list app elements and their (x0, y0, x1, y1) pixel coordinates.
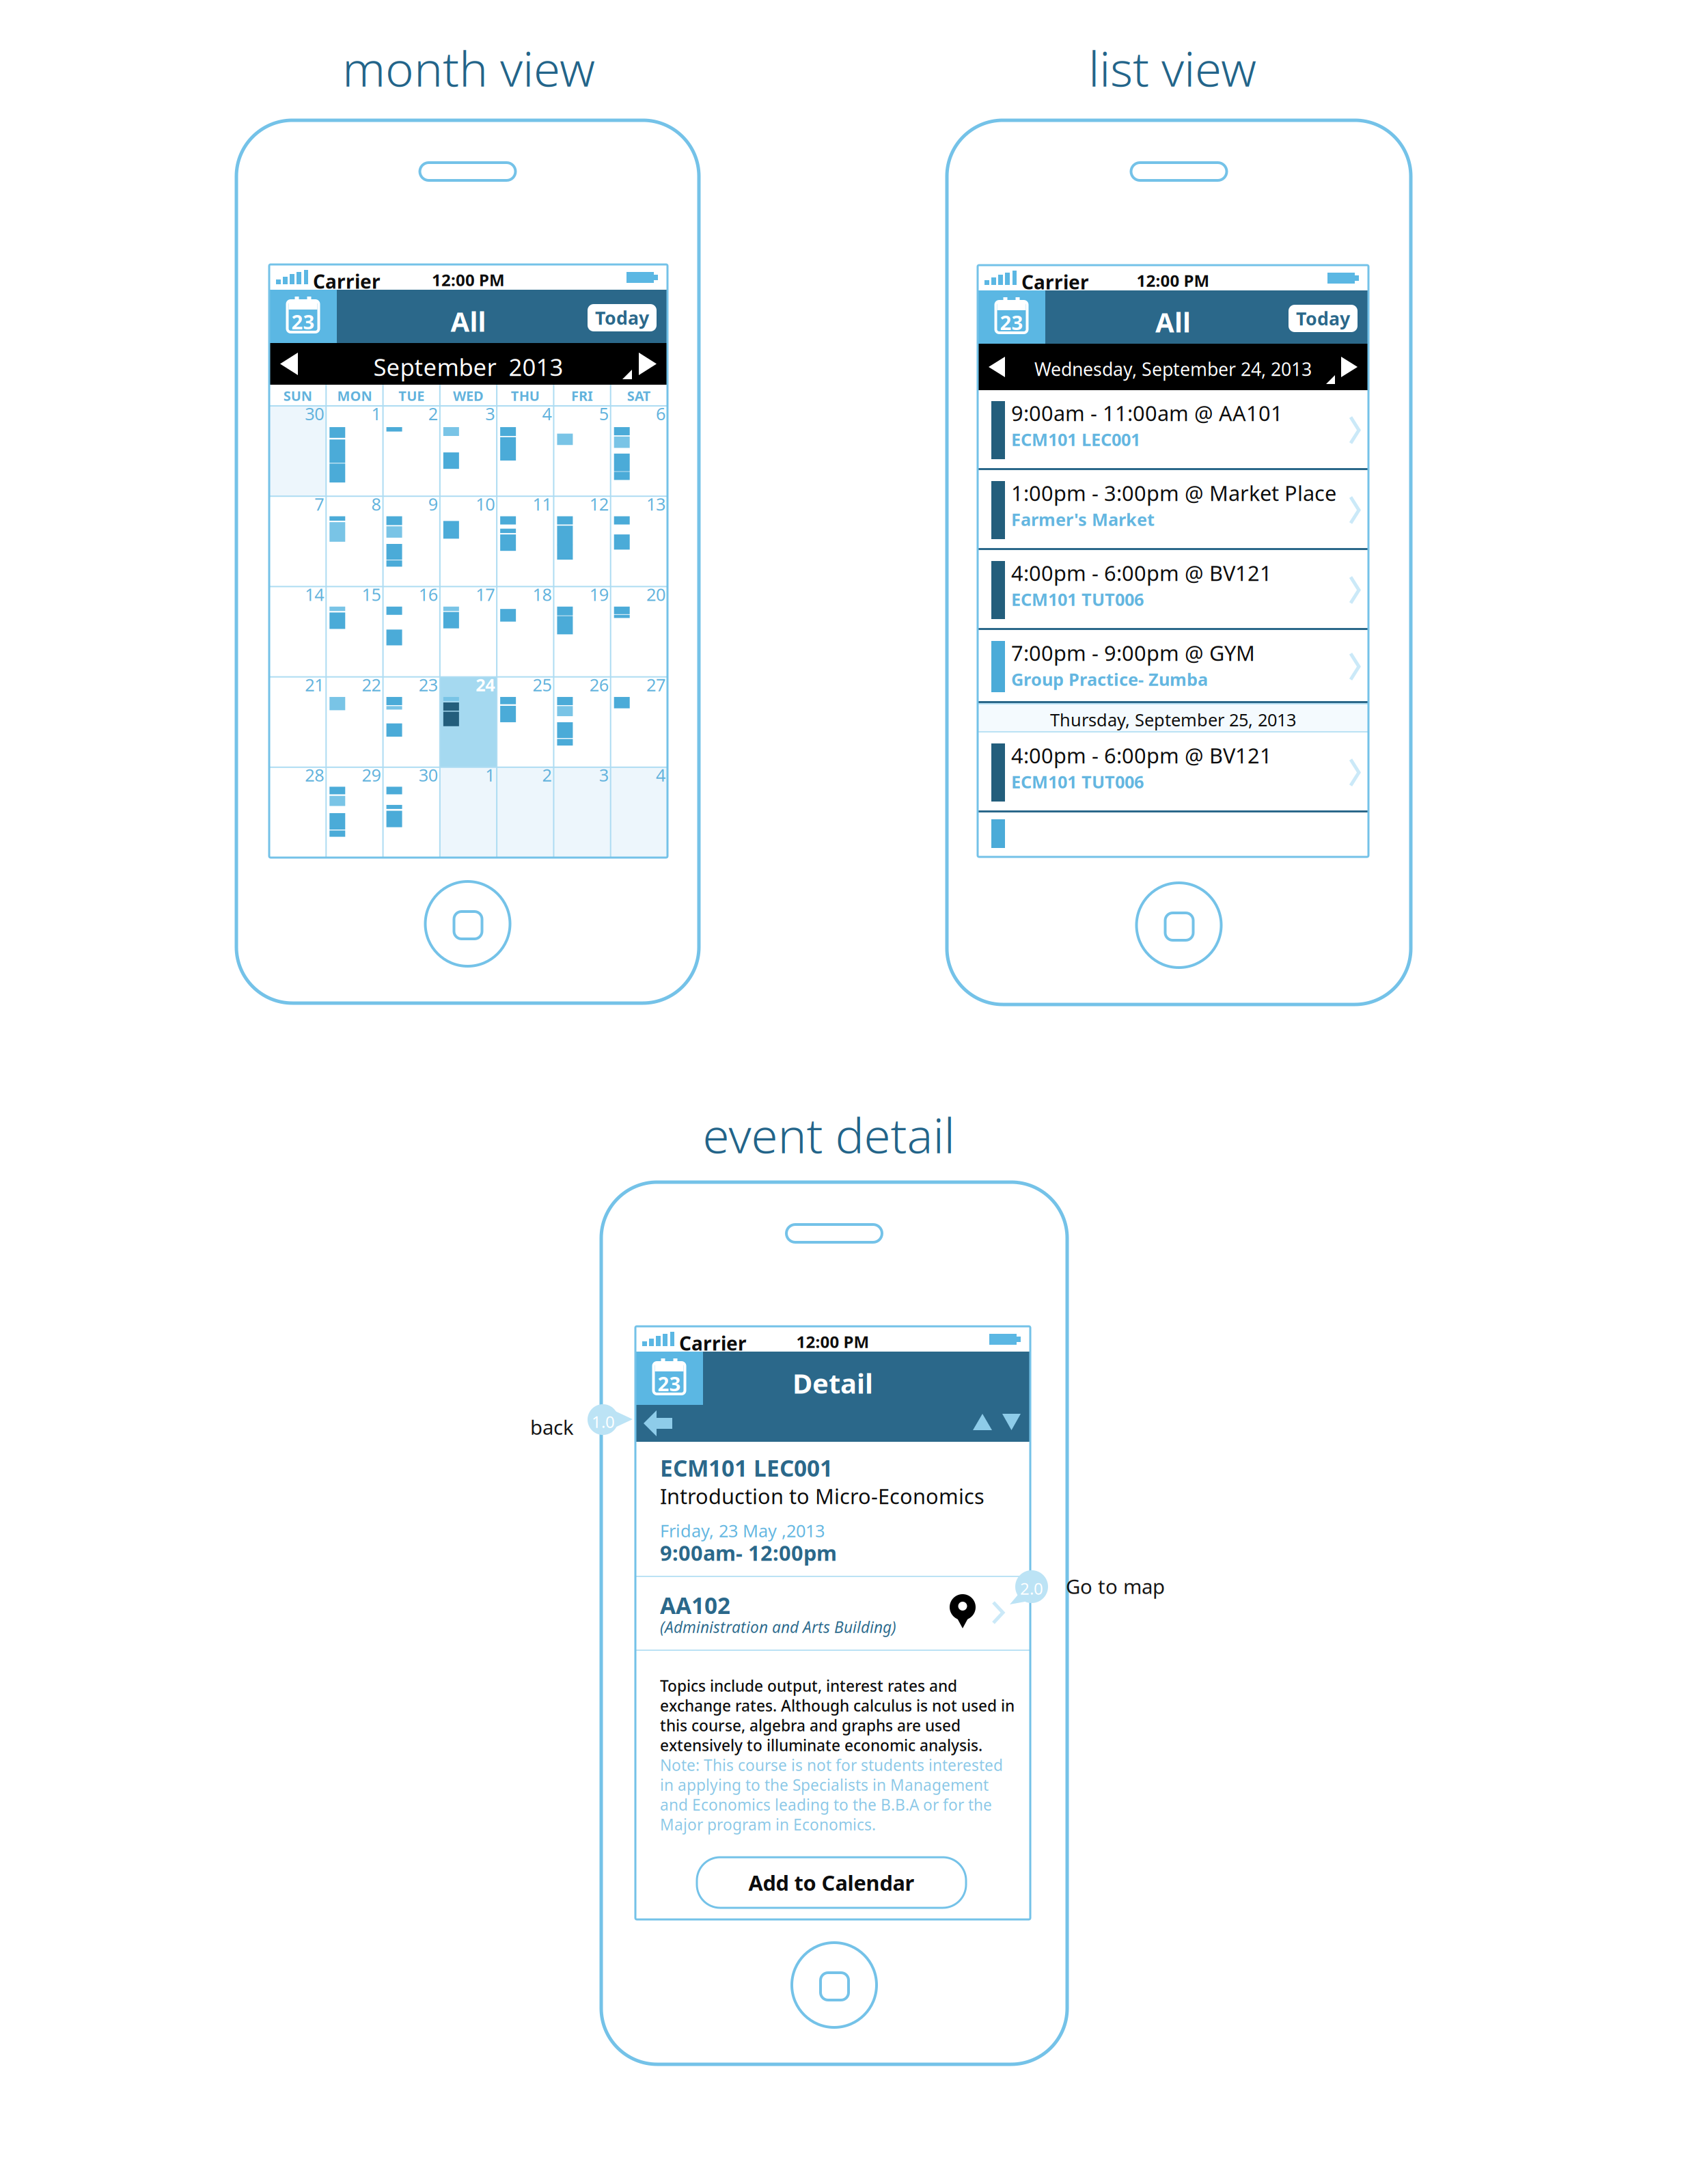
button[interactable]: 1:00pm - 3:00pm @ Market Place (978, 470, 1368, 550)
staticText: Farmer's Market (1011, 508, 1155, 531)
staticText: FRI (571, 387, 593, 405)
staticText: WED (453, 387, 484, 405)
button[interactable]: AA102 (635, 1576, 1030, 1650)
staticText: ECM101 TUT006 (1011, 588, 1144, 611)
staticText: exchange rates. Although calculus is not… (660, 1695, 1015, 1716)
staticText: Add to Calendar (748, 1869, 914, 1896)
staticText: 21 (305, 673, 324, 696)
staticText: event detail (703, 1103, 955, 1167)
staticText: 12:00 PM (1137, 270, 1210, 291)
staticText: 4:00pm - 6:00pm @ BV121 (1011, 559, 1272, 587)
staticText: 23 (658, 1370, 681, 1397)
staticText: 15 (362, 583, 381, 606)
staticText: THU (511, 387, 540, 405)
staticText: Carrier (1021, 269, 1089, 295)
staticText: Introduction to Micro-Economics (660, 1482, 984, 1510)
staticText: 4 (542, 402, 552, 425)
staticText: AA102 (660, 1590, 730, 1620)
staticText: 8 (371, 492, 381, 515)
staticText: in applying to the Specialists in Manage… (660, 1775, 989, 1795)
staticText: 9:00am - 11:00am @ AA101 (1011, 399, 1283, 427)
staticText: Go to map (1066, 1573, 1165, 1600)
staticText: 19 (589, 583, 609, 606)
staticText: this course, algebra and graphs are used (660, 1715, 961, 1736)
staticText: 7:00pm - 9:00pm @ GYM (1011, 639, 1255, 667)
button[interactable]: 4:00pm - 6:00pm @ BV121 (978, 733, 1368, 812)
staticText: 26 (589, 673, 609, 696)
staticText: Major program in Economics. (660, 1814, 876, 1835)
staticText: TUE (398, 387, 424, 405)
staticText: 25 (532, 673, 552, 696)
staticText: Today (595, 306, 649, 330)
staticText: 5 (599, 402, 609, 425)
button[interactable]: 9:00am - 11:00am @ AA101 (978, 390, 1368, 470)
button[interactable]: 7:00pm - 9:00pm @ GYM (978, 630, 1368, 703)
staticText: 9:00am- 12:00pm (660, 1539, 837, 1567)
staticText: 18 (532, 583, 552, 606)
staticText: 2.0 (1020, 1577, 1043, 1599)
staticText: 28 (305, 763, 324, 786)
staticText: 11 (532, 492, 552, 515)
staticText: 10 (476, 492, 495, 515)
staticText: Carrier (679, 1330, 747, 1356)
staticText: 30 (305, 402, 324, 425)
staticText: 2 (428, 402, 438, 425)
staticText: Detail (793, 1365, 873, 1401)
staticText: MON (337, 387, 372, 405)
staticText: 2 (542, 763, 552, 786)
staticText: 7 (314, 492, 324, 515)
staticText: extensively to illuminate economic analy… (660, 1735, 982, 1755)
staticText: All (1155, 304, 1191, 340)
staticText: and Economics leading to the B.B.A or fo… (660, 1794, 992, 1815)
staticText: 23 (291, 308, 315, 335)
staticText: ECM101 LEC001 (660, 1453, 833, 1483)
staticText: 13 (646, 492, 665, 515)
staticText: SAT (627, 387, 651, 405)
staticText: 1 (371, 402, 381, 425)
staticText: Today (1296, 306, 1350, 331)
staticText: 3 (599, 763, 609, 786)
staticText: Group Practice- Zumba (1011, 668, 1208, 691)
staticText: 24 (476, 673, 495, 696)
staticText: 1 (485, 763, 495, 786)
staticText: Carrier (313, 269, 381, 294)
staticText: 16 (419, 583, 438, 606)
button[interactable]: 4:00pm - 6:00pm @ BV121 (978, 550, 1368, 630)
staticText: 29 (362, 763, 381, 786)
staticText: 4 (656, 763, 665, 786)
staticText: 30 (419, 763, 438, 786)
staticText: September 2013 (373, 351, 563, 383)
button[interactable]: Today (588, 304, 657, 331)
staticText: ECM101 LEC001 (1011, 428, 1140, 451)
staticText: 12:00 PM (796, 1331, 869, 1353)
staticText: (Administration and Arts Building) (660, 1617, 896, 1637)
staticText: back (530, 1414, 574, 1440)
staticText: 23 (419, 673, 438, 696)
staticText: Thursday, September 25, 2013 (1050, 708, 1296, 731)
staticText: 12:00 PM (432, 269, 505, 291)
staticText: 1.0 (592, 1411, 615, 1432)
staticText: 9 (428, 492, 438, 515)
staticText: month view (342, 36, 595, 100)
staticText: 17 (476, 583, 495, 606)
staticText: list view (1088, 36, 1256, 100)
staticText: 1:00pm - 3:00pm @ Market Place (1011, 479, 1336, 507)
button[interactable]: Add to Calendar (697, 1857, 966, 1908)
staticText: Note: This course is not for students in… (660, 1755, 1003, 1775)
staticText: 14 (305, 583, 324, 606)
staticText: 23 (1000, 309, 1023, 336)
staticText: All (451, 303, 486, 339)
staticText: Wednesday, September 24, 2013 (1034, 357, 1312, 381)
button[interactable]: Today (1289, 305, 1358, 332)
staticText: Friday, 23 May ,2013 (660, 1519, 825, 1542)
staticText: 12 (589, 492, 609, 515)
staticText: 27 (646, 673, 665, 696)
staticText: ECM101 TUT006 (1011, 770, 1144, 793)
